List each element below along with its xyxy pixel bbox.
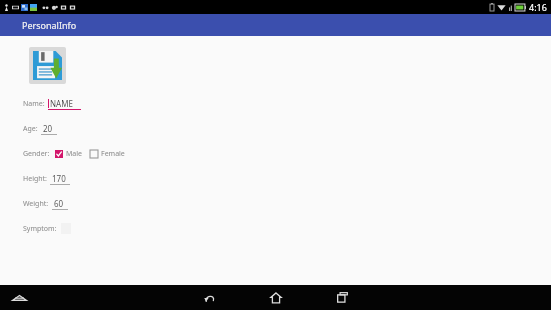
- button[interactable]: Save: [29, 47, 66, 84]
- staticText: 170: [52, 173, 66, 184]
- button[interactable]: Female: [90, 149, 125, 159]
- button[interactable]: Home: [247, 285, 305, 310]
- staticText: Gender:: [23, 149, 50, 159]
- staticText: 4:16: [529, 1, 547, 13]
- button[interactable]: Age:: [23, 122, 57, 135]
- staticText: Age:: [23, 124, 38, 134]
- button[interactable]: Male: [55, 149, 83, 159]
- staticText: Weight:: [23, 199, 49, 209]
- staticText: Female: [101, 149, 125, 159]
- staticText: NAME: [50, 98, 73, 109]
- staticText: Male: [66, 149, 83, 159]
- staticText: 60: [54, 198, 64, 209]
- staticText: Height:: [23, 174, 47, 184]
- staticText: Symptom:: [23, 224, 57, 234]
- staticText: PersonalInfo: [22, 19, 77, 31]
- button[interactable]: Menu: [9, 288, 29, 308]
- button[interactable]: Back: [181, 285, 239, 310]
- staticText: 20: [43, 123, 53, 134]
- button[interactable]: Name:: [23, 97, 81, 110]
- button[interactable]: Height:: [23, 172, 70, 185]
- button[interactable]: Symptom:: [23, 222, 71, 235]
- button[interactable]: Recent apps: [313, 285, 371, 310]
- button[interactable]: Weight:: [23, 197, 68, 210]
- staticText: Name:: [23, 99, 45, 109]
